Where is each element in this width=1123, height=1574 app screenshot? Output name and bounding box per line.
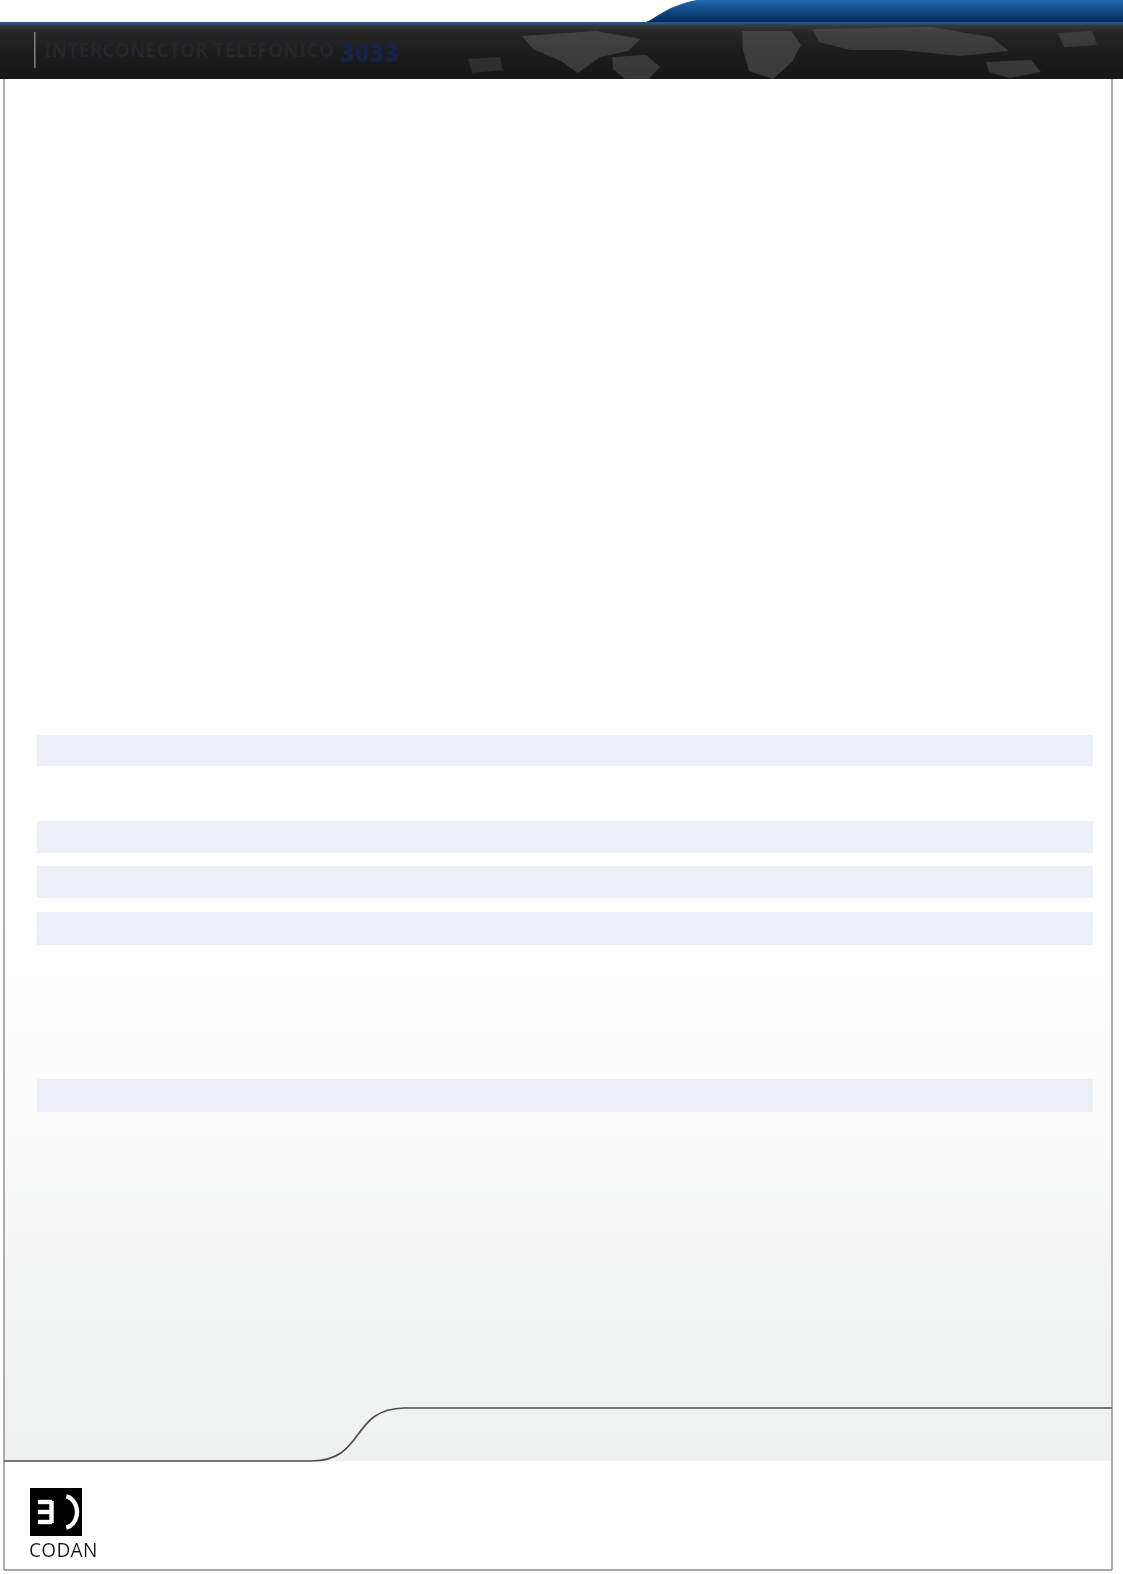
button[interactable]: INTERCONECTOR TELEFÓNICO	[44, 35, 474, 65]
button[interactable]: CODAN	[29, 1537, 99, 1563]
staticText: INTERCONECTOR TELEFÓNICO	[44, 37, 340, 63]
staticText: 3033	[340, 35, 399, 65]
